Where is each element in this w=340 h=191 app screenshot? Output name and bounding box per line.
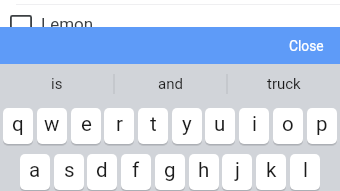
staticText: a <box>29 158 41 182</box>
staticText: q <box>12 112 24 136</box>
button[interactable]: f <box>121 154 151 190</box>
button[interactable]: Lemon <box>0 15 340 37</box>
button[interactable]: y <box>172 108 202 144</box>
staticText: p <box>316 112 328 136</box>
button[interactable]: o <box>273 108 303 144</box>
staticText: g <box>164 158 176 182</box>
button[interactable]: s <box>54 154 84 190</box>
button[interactable]: h <box>189 154 219 190</box>
staticText: Close <box>289 38 324 54</box>
staticText: u <box>214 112 226 136</box>
staticText: t <box>150 112 157 136</box>
button[interactable]: w <box>37 108 67 144</box>
staticText: k <box>266 158 277 182</box>
staticText: o <box>282 112 294 136</box>
staticText: s <box>64 158 75 182</box>
button[interactable]: k <box>256 154 286 190</box>
staticText: w <box>44 112 60 136</box>
button[interactable]: l <box>290 154 320 190</box>
staticText: j <box>235 158 240 182</box>
button[interactable]: i <box>239 108 269 144</box>
button[interactable]: g <box>155 154 185 190</box>
button[interactable]: q <box>3 108 33 144</box>
staticText: i <box>252 112 257 136</box>
button[interactable]: truck <box>227 64 340 104</box>
button[interactable]: Close <box>0 27 340 64</box>
button[interactable]: a <box>20 154 50 190</box>
button[interactable]: and <box>114 64 227 104</box>
staticText: h <box>198 158 210 182</box>
staticText: r <box>116 112 123 136</box>
staticText: truck <box>267 75 301 93</box>
staticText: d <box>96 158 108 182</box>
staticText: Lemon <box>41 14 94 34</box>
button[interactable]: p <box>307 108 337 144</box>
staticText: e <box>81 112 92 136</box>
button[interactable]: d <box>87 154 117 190</box>
button[interactable]: u <box>205 108 235 144</box>
staticText: is <box>51 75 63 93</box>
button[interactable]: t <box>138 108 168 144</box>
staticText: and <box>158 75 183 93</box>
staticText: l <box>303 158 308 182</box>
button[interactable]: r <box>104 108 134 144</box>
staticText: y <box>182 112 192 136</box>
button[interactable]: j <box>222 154 252 190</box>
button[interactable]: is <box>0 64 114 104</box>
button[interactable]: e <box>71 108 101 144</box>
staticText: f <box>132 158 140 182</box>
